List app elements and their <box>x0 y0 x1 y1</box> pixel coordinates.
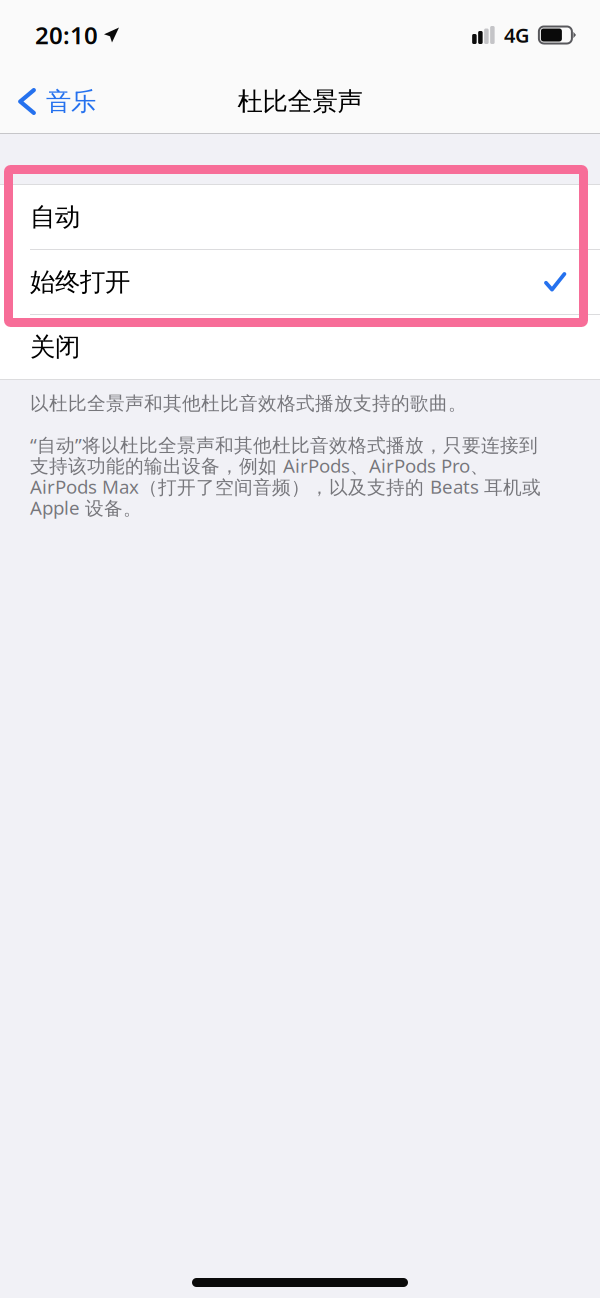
button[interactable]: 始终打开 <box>0 250 600 315</box>
staticText: 音乐 <box>46 86 96 117</box>
button[interactable]: 关闭 <box>0 315 600 379</box>
staticText: 以杜比全景声和其他杜比音效格式播放支持的歌曲。 <box>30 394 467 413</box>
staticText: 杜比全景声 <box>237 86 362 117</box>
button[interactable]: 音乐 <box>0 77 110 126</box>
staticText: 始终打开 <box>30 267 130 297</box>
staticText: 4G <box>504 22 530 48</box>
staticText: 20:10 <box>35 19 98 51</box>
staticText: 关闭 <box>30 332 80 362</box>
staticText: 自动 <box>30 202 80 232</box>
staticText: “自动”将以杜比全景声和其他杜比音效格式播放，只要连接到支持该功能的输出设备，例… <box>30 434 541 518</box>
button[interactable]: 自动 <box>0 185 600 250</box>
